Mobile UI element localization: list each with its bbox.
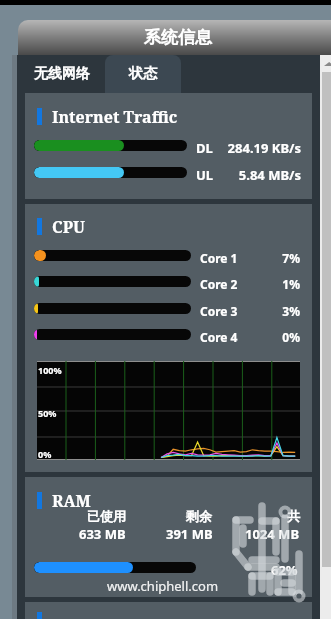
staticText: 1024 MB	[245, 525, 300, 543]
button[interactable]: Internet Traffic	[25, 93, 312, 199]
staticText: RAM	[52, 490, 91, 512]
button[interactable]: 无线网络	[18, 55, 105, 93]
staticText: 3%	[25, 303, 300, 319]
staticText: Core 2	[200, 276, 238, 292]
button[interactable]: Scroll up	[320, 56, 331, 72]
staticText: 无线网络	[34, 65, 90, 83]
staticText: 100%	[38, 364, 62, 376]
staticText: 284.19 KB/s	[25, 139, 301, 157]
button[interactable]: RAM	[25, 477, 312, 597]
staticText: 0%	[38, 448, 52, 460]
staticText: 1%	[25, 276, 300, 292]
staticText: 状态	[129, 65, 157, 83]
staticText: 50%	[38, 407, 57, 419]
staticText: UL	[196, 166, 214, 184]
staticText: www.chiphell.com	[107, 577, 219, 595]
staticText: 391 MB	[166, 525, 213, 543]
button[interactable]: 状态	[105, 55, 181, 93]
staticText: CPU	[52, 216, 85, 238]
staticText: 0%	[25, 329, 300, 345]
staticText: Core 4	[200, 329, 238, 345]
staticText: 已使用	[87, 508, 126, 524]
staticText: 633 MB	[79, 525, 126, 543]
staticText: 剩余	[186, 508, 212, 524]
staticText: Core 3	[200, 303, 238, 319]
staticText: Core 1	[200, 250, 238, 266]
staticText: 系统信息	[144, 27, 212, 48]
staticText: Internet Traffic	[52, 106, 178, 128]
staticText: 7%	[25, 250, 300, 266]
button[interactable]: CPU	[25, 204, 312, 472]
staticText: 5.84 MB/s	[25, 166, 301, 184]
staticText: DL	[196, 139, 213, 157]
staticText: 62%	[271, 561, 298, 579]
staticText: 共	[287, 508, 300, 524]
